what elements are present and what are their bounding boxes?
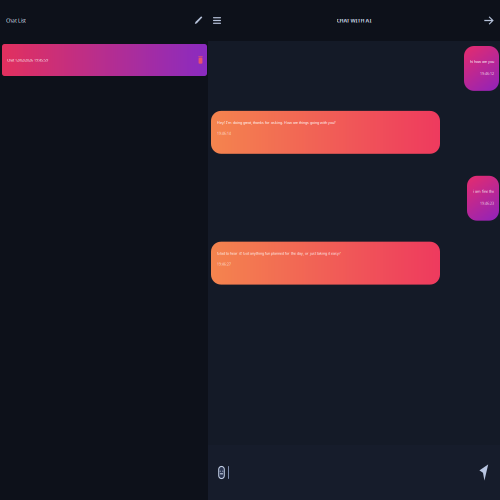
staticText: hi how are you bbox=[470, 59, 494, 64]
staticText: 19:46:23 bbox=[480, 201, 494, 206]
button[interactable]: Emoji bbox=[215, 465, 228, 479]
button[interactable]: Menu bbox=[209, 8, 225, 33]
staticText: Chat List bbox=[6, 17, 26, 24]
button[interactable]: New chat bbox=[190, 8, 207, 33]
button[interactable]: Send bbox=[476, 464, 492, 481]
staticText: Chat 12/02/2026 19:45:59 bbox=[7, 57, 48, 63]
button[interactable]: Forward bbox=[481, 7, 497, 34]
staticText: i am fine thx bbox=[473, 189, 494, 194]
staticText: 19:46:14 bbox=[217, 131, 231, 136]
button[interactable]: Chat 12/02/2026 19:45:59 bbox=[2, 44, 207, 76]
staticText: Glad to hear it! Got anything fun planne… bbox=[217, 251, 341, 256]
staticText: CHAT WITH AI bbox=[336, 17, 371, 24]
staticText: Hey! I'm doing great, thanks for asking.… bbox=[217, 120, 336, 125]
staticText: 19:46:12 bbox=[480, 71, 494, 76]
staticText: 19:46:27 bbox=[217, 262, 231, 267]
button[interactable]: Chat List bbox=[0, 7, 32, 34]
